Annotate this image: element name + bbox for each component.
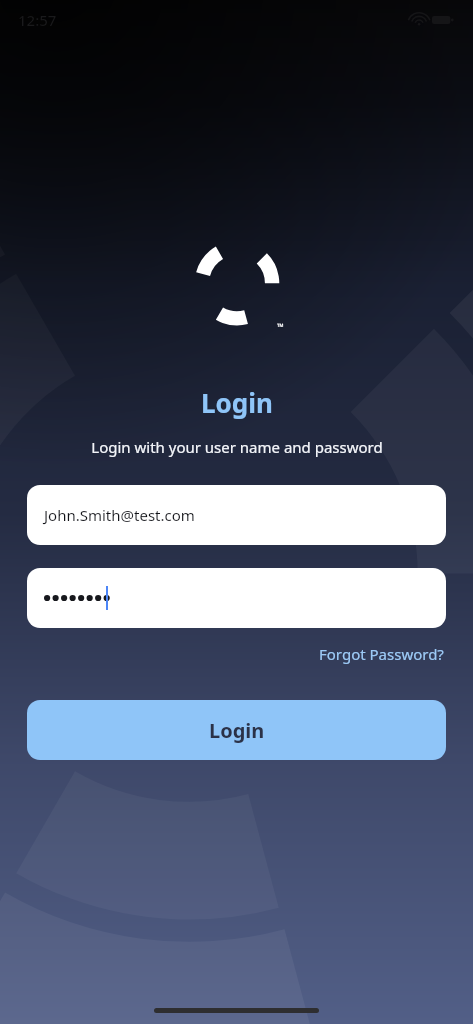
staticText: Forgot Password?: [319, 644, 444, 664]
staticText: 12:57: [18, 10, 57, 30]
button[interactable]: Login: [27, 700, 446, 760]
button[interactable]: [27, 568, 446, 628]
staticText: John.Smith@test.com: [44, 505, 195, 525]
staticText: Login: [209, 717, 265, 744]
button[interactable]: Forgot Password?: [317, 640, 446, 668]
other: App logo: [190, 240, 284, 334]
button[interactable]: John.Smith@test.com: [27, 485, 446, 545]
staticText: Login: [201, 385, 273, 420]
staticText: ™: [277, 320, 284, 332]
staticText: Login with your user name and password: [91, 437, 383, 457]
